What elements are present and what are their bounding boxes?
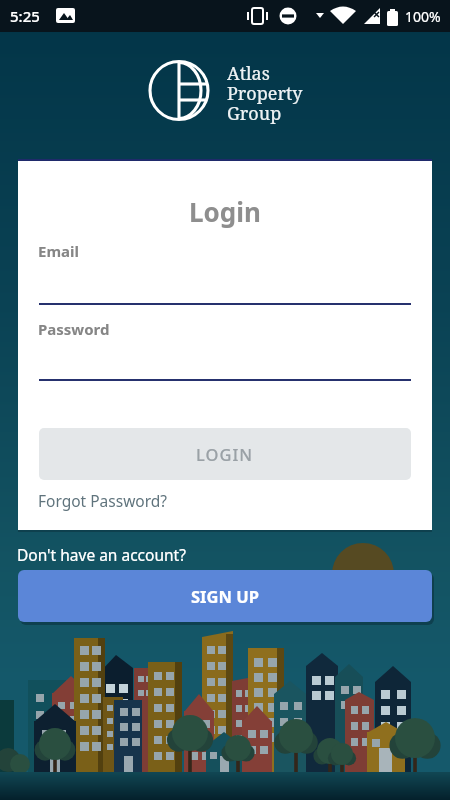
staticText: 100%	[405, 7, 441, 26]
staticText: 5:25	[10, 6, 40, 26]
staticText: LOGIN	[196, 443, 254, 465]
button[interactable]: SIGN UP	[18, 570, 432, 622]
staticText: SIGN UP	[191, 585, 259, 607]
staticText: Group	[227, 101, 282, 126]
staticText: Property	[227, 81, 303, 106]
staticText: Don't have an account?	[17, 544, 186, 565]
staticText: Password	[38, 319, 110, 339]
staticText: Forgot Password?	[38, 490, 168, 511]
button[interactable]: Forgot Password?	[38, 490, 168, 511]
staticText: Login	[189, 194, 261, 229]
button[interactable]: LOGIN	[39, 428, 411, 480]
staticText: Atlas	[227, 61, 270, 86]
staticText: Email	[38, 241, 79, 261]
